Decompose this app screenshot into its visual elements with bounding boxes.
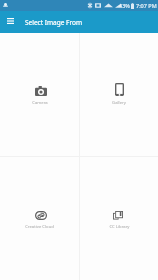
button[interactable]: Menu: [0, 11, 21, 33]
staticText: 7:07 PM: [136, 2, 157, 9]
staticText: 43%: [119, 2, 130, 9]
staticText: Select Image From: [25, 18, 82, 27]
staticText: Creative Cloud: [25, 224, 54, 230]
staticText: Gallery: [112, 100, 126, 106]
button[interactable]: Camera: [0, 33, 79, 156]
staticText: Camera: [32, 100, 48, 106]
button[interactable]: Creative Cloud: [0, 157, 79, 280]
staticText: CC Library: [109, 224, 130, 230]
button[interactable]: CC Library: [80, 157, 158, 280]
button[interactable]: Gallery: [80, 33, 158, 156]
